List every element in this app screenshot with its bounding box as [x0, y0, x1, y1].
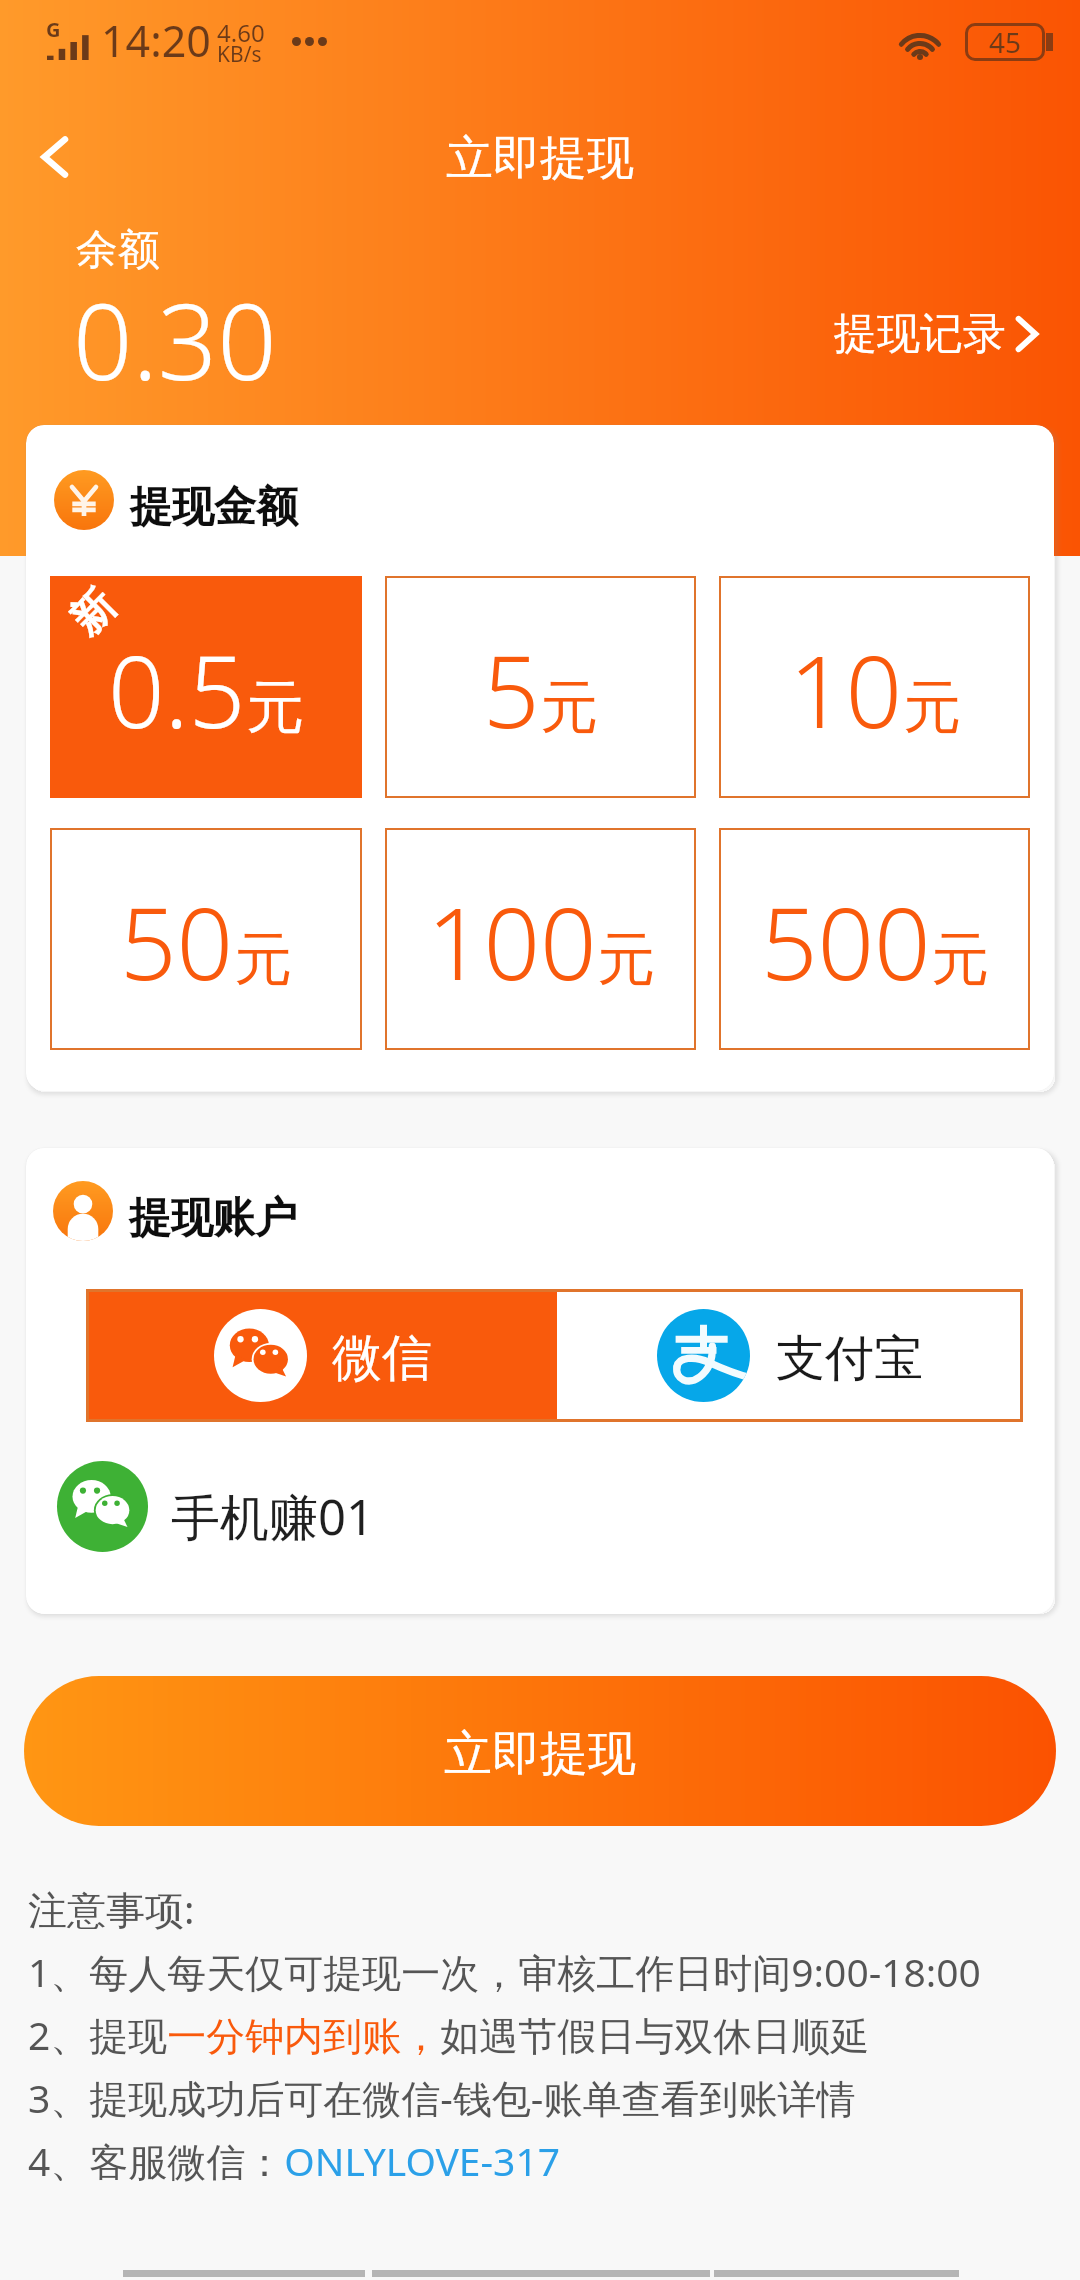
- staticText: 0.30: [73, 269, 277, 411]
- button[interactable]: 立即提现: [24, 1676, 1056, 1826]
- staticText: 4.60: [217, 16, 265, 49]
- button[interactable]: 50: [50, 828, 362, 1050]
- staticText: 1、每人每天仅可提现一次，审核工作日时间9:00-18:00: [28, 1945, 981, 1998]
- staticText: 提现记录: [834, 307, 1006, 361]
- staticText: 支付宝: [776, 1328, 923, 1390]
- staticText: G: [46, 16, 61, 43]
- button[interactable]: Back: [10, 101, 98, 213]
- staticText: 注意事项:: [28, 1882, 195, 1935]
- button[interactable]: 支付宝: [557, 1289, 1023, 1422]
- staticText: 3、提现成功后可在微信-钱包-账单查看到账详情: [28, 2071, 856, 2124]
- button[interactable]: 500: [719, 828, 1030, 1050]
- staticText: 元: [903, 671, 961, 744]
- staticText: 2、提现一分钟内到账，如遇节假日与双休日顺延: [28, 2008, 870, 2061]
- staticText: 5: [483, 622, 540, 757]
- staticText: 4、客服微信：ONLYLOVE-317: [28, 2134, 561, 2187]
- staticText: 手机赚01: [171, 1483, 375, 1550]
- staticText: 新: [59, 579, 127, 646]
- staticText: 立即提现: [446, 129, 634, 188]
- staticText: 50: [120, 874, 234, 1009]
- staticText: 提现金额: [130, 481, 298, 534]
- button[interactable]: 100: [385, 828, 696, 1050]
- button[interactable]: 微信: [86, 1289, 557, 1422]
- staticText: 元: [540, 671, 598, 744]
- staticText: 500: [761, 874, 931, 1009]
- staticText: 45: [989, 23, 1022, 61]
- button[interactable]: 提现记录: [834, 307, 1038, 361]
- button[interactable]: 新: [50, 576, 362, 798]
- staticText: 提现账户: [129, 1192, 297, 1245]
- staticText: 余额: [76, 224, 160, 277]
- staticText: 微信: [332, 1327, 432, 1390]
- staticText: 14:20: [101, 11, 211, 70]
- staticText: 元: [597, 923, 655, 996]
- staticText: 100: [427, 874, 597, 1009]
- button[interactable]: 10: [719, 576, 1030, 798]
- staticText: 10: [789, 622, 903, 757]
- staticText: 元: [246, 671, 304, 744]
- staticText: 0.5: [108, 622, 246, 757]
- staticText: 元: [931, 923, 989, 996]
- staticText: KB/s: [217, 40, 262, 69]
- staticText: 立即提现: [444, 1724, 636, 1784]
- button[interactable]: 5: [385, 576, 696, 798]
- staticText: 元: [234, 923, 292, 996]
